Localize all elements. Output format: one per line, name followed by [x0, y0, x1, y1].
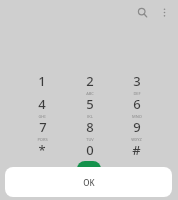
- button[interactable]: 9: [113, 118, 160, 141]
- staticText: 7: [39, 118, 47, 136]
- button[interactable]: OK: [5, 167, 172, 197]
- button[interactable]: More options: [154, 2, 174, 22]
- staticText: TUV: [86, 137, 94, 141]
- staticText: 0: [86, 141, 94, 159]
- button[interactable]: Call: [77, 161, 101, 177]
- button[interactable]: 4: [18, 95, 66, 118]
- button[interactable]: *: [18, 141, 66, 164]
- staticText: 4: [38, 95, 46, 113]
- button[interactable]: 8: [66, 118, 113, 141]
- button[interactable]: 0: [66, 141, 113, 164]
- staticText: #: [132, 141, 141, 159]
- button[interactable]: 6: [113, 95, 160, 118]
- staticText: PQRS: [37, 137, 48, 141]
- button[interactable]: 7: [18, 118, 66, 141]
- button[interactable]: #: [113, 141, 160, 164]
- staticText: 9: [133, 118, 141, 136]
- staticText: 5: [86, 95, 94, 113]
- staticText: 8: [86, 118, 94, 136]
- staticText: WXYZ: [131, 137, 142, 141]
- staticText: MNO: [132, 114, 142, 118]
- staticText: OK: [83, 177, 95, 188]
- staticText: *: [38, 141, 46, 159]
- button[interactable]: 1: [18, 72, 66, 95]
- button[interactable]: 5: [66, 95, 113, 118]
- staticText: 3: [133, 72, 141, 90]
- staticText: 6: [133, 95, 141, 113]
- staticText: JKL: [87, 114, 93, 118]
- staticText: DEF: [133, 91, 141, 95]
- button[interactable]: 3: [113, 72, 160, 95]
- button[interactable]: Search: [132, 2, 152, 22]
- staticText: 2: [86, 72, 94, 90]
- staticText: +: [89, 160, 92, 164]
- button[interactable]: 2: [66, 72, 113, 95]
- staticText: GHI: [38, 114, 46, 118]
- staticText: 1: [38, 72, 46, 90]
- staticText: ABC: [86, 91, 94, 95]
